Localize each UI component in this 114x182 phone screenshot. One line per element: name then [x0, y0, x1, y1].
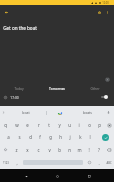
staticText: d — [29, 134, 32, 140]
staticText: 12:00 — [102, 1, 109, 5]
staticText: x — [26, 147, 29, 153]
button[interactable]: Back — [1, 7, 12, 18]
button[interactable]: ?123 — [0, 156, 11, 169]
button[interactable]: g — [45, 131, 55, 143]
staticText: Today — [14, 86, 24, 90]
staticText: Tomorrow — [49, 86, 65, 90]
staticText: c — [37, 147, 40, 153]
button[interactable]: s — [14, 131, 25, 143]
button[interactable]: x — [22, 143, 33, 156]
staticText: boat — [22, 110, 30, 115]
button[interactable]: l — [85, 131, 95, 143]
staticText: y — [58, 122, 61, 128]
staticText: z — [15, 147, 18, 153]
button[interactable]: z — [11, 143, 22, 156]
button[interactable]: k — [75, 131, 85, 143]
button[interactable]: Today — [0, 83, 38, 92]
button[interactable]: d — [25, 131, 35, 143]
button[interactable]: n — [64, 143, 74, 156]
staticText: ?123 — [3, 161, 9, 165]
button[interactable]: Back — [20, 170, 32, 182]
button[interactable]: More options — [102, 7, 113, 18]
staticText: ? — [98, 147, 100, 153]
staticText: k — [79, 134, 82, 140]
button[interactable]: Alarm — [94, 7, 105, 18]
staticText: p — [98, 122, 101, 128]
button[interactable]: c — [33, 143, 44, 156]
button[interactable]: Enter — [102, 134, 109, 141]
staticText: boats — [83, 110, 92, 115]
staticText: n — [68, 147, 71, 153]
button[interactable]: a — [3, 131, 14, 143]
staticText: Other — [90, 86, 100, 90]
button[interactable]: t — [44, 119, 54, 131]
staticText: a — [7, 134, 10, 140]
button[interactable]: ! — [84, 143, 94, 156]
staticText: 17:00 — [10, 95, 19, 99]
button[interactable]: Pick a date — [103, 75, 111, 83]
staticText: m — [77, 147, 82, 153]
button[interactable]: m — [74, 143, 84, 156]
button[interactable]: Home — [51, 170, 63, 182]
staticText: s — [18, 134, 21, 140]
button[interactable]: , — [11, 156, 22, 169]
button[interactable]: Other — [76, 83, 114, 92]
button[interactable]: Clipboard — [104, 119, 114, 131]
staticText: h — [59, 134, 62, 140]
staticText: ABC — [106, 161, 112, 165]
button[interactable]: p — [94, 119, 104, 131]
staticText: g — [49, 134, 52, 140]
button[interactable]: b — [54, 143, 64, 156]
button[interactable]: Emoji — [84, 156, 94, 169]
button[interactable]: r — [33, 119, 44, 131]
staticText: w — [15, 122, 19, 128]
button[interactable]: boat — [6, 106, 46, 119]
button[interactable] — [47, 106, 73, 119]
button[interactable]: q — [0, 119, 11, 131]
staticText: f — [39, 134, 41, 140]
button[interactable]: Backspace — [104, 143, 114, 156]
staticText: b — [58, 147, 61, 153]
button[interactable]: Voice input — [102, 106, 114, 119]
button[interactable]: o — [84, 119, 94, 131]
button[interactable]: f — [35, 131, 45, 143]
staticText: j — [69, 134, 71, 140]
staticText: i — [78, 122, 80, 128]
button[interactable]: Tomorrow — [38, 83, 76, 92]
staticText: Get on the boat — [3, 25, 37, 31]
button[interactable]: w — [11, 119, 22, 131]
button[interactable]: Shift — [0, 143, 11, 156]
button[interactable]: u — [64, 119, 74, 131]
staticText: t — [48, 122, 50, 128]
staticText: v — [48, 147, 51, 153]
staticText: o — [88, 122, 91, 128]
button[interactable]: Get on the boat — [0, 24, 114, 31]
button[interactable]: Recent apps — [83, 170, 95, 182]
button[interactable]: Expand suggestions — [0, 106, 6, 119]
staticText: l — [89, 134, 91, 140]
staticText: q — [4, 122, 7, 128]
staticText: e — [26, 122, 29, 128]
button[interactable]: y — [54, 119, 64, 131]
button[interactable]: boats — [73, 106, 102, 119]
button[interactable]: j — [65, 131, 75, 143]
staticText: r — [38, 122, 40, 128]
button[interactable]: h — [55, 131, 65, 143]
button[interactable]: ? — [94, 143, 104, 156]
button[interactable]: e — [22, 119, 33, 131]
button[interactable]: i — [74, 119, 84, 131]
staticText: u — [68, 122, 71, 128]
button[interactable]: v — [44, 143, 54, 156]
staticText: ! — [88, 147, 90, 153]
button[interactable]: 17:00 — [0, 92, 114, 102]
staticText: . — [98, 160, 100, 166]
button[interactable]: ABC — [104, 156, 114, 169]
staticText: , — [16, 160, 18, 166]
